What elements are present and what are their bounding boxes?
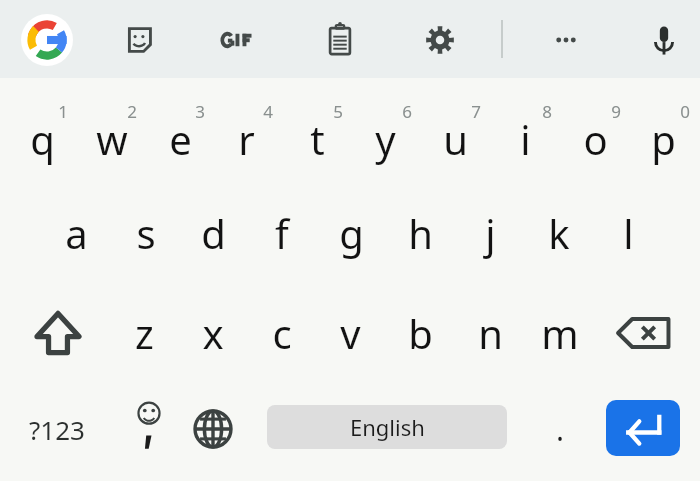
staticText: 6	[402, 100, 412, 123]
button[interactable]: y	[351, 105, 420, 173]
staticText: o	[583, 112, 608, 166]
staticText: p	[651, 112, 676, 166]
staticText: f	[275, 206, 289, 260]
button[interactable]: w	[77, 105, 146, 173]
button[interactable]: a	[42, 199, 111, 267]
button[interactable]: e	[146, 105, 215, 173]
button[interactable]: p	[629, 105, 698, 173]
button[interactable]: Voice input	[638, 14, 690, 66]
button[interactable]: Switch language	[182, 398, 244, 460]
staticText: 3	[195, 100, 205, 123]
button[interactable]: Enter	[606, 400, 680, 456]
staticText: u	[443, 112, 468, 166]
staticText: ?123	[29, 412, 85, 447]
staticText: b	[408, 306, 433, 360]
button[interactable]: q	[8, 105, 77, 173]
staticText: 4	[263, 100, 273, 123]
button[interactable]: .	[532, 400, 588, 458]
button[interactable]: 0	[650, 97, 700, 126]
button[interactable]: c	[247, 299, 316, 367]
staticText: s	[136, 206, 156, 260]
button[interactable]: k	[524, 199, 593, 267]
button[interactable]: 2	[97, 97, 166, 126]
staticText: 2	[127, 100, 137, 123]
staticText: w	[96, 112, 128, 166]
button[interactable]: 6	[372, 97, 441, 126]
staticText: .	[556, 409, 565, 450]
button[interactable]: u	[421, 105, 490, 173]
staticText: z	[135, 306, 154, 360]
button[interactable]: z	[110, 299, 179, 367]
button[interactable]: Stickers	[113, 14, 165, 66]
button[interactable]: f	[247, 199, 316, 267]
staticText: j	[485, 206, 496, 260]
button[interactable]: Clipboard	[314, 14, 366, 66]
button[interactable]: 3	[165, 97, 234, 126]
button[interactable]: More options	[540, 14, 592, 66]
staticText: i	[520, 112, 531, 166]
button[interactable]: g	[317, 199, 386, 267]
button[interactable]: 4	[233, 97, 302, 126]
staticText: 8	[542, 100, 552, 123]
button[interactable]: t	[283, 105, 352, 173]
button[interactable]: ?123	[14, 400, 100, 458]
button[interactable]: d	[179, 199, 248, 267]
staticText: c	[272, 306, 292, 360]
button[interactable]: r	[212, 105, 281, 173]
button[interactable]: 5	[303, 97, 372, 126]
button[interactable]: v	[316, 299, 385, 367]
button[interactable]: x	[178, 299, 247, 367]
button[interactable]: 8	[512, 97, 581, 126]
button[interactable]: Google Search	[21, 14, 73, 66]
staticText: a	[65, 206, 88, 260]
staticText: English	[350, 412, 425, 442]
staticText: v	[340, 306, 361, 360]
staticText: q	[30, 112, 55, 166]
button[interactable]: i	[491, 105, 560, 173]
button[interactable]: b	[386, 299, 455, 367]
button[interactable]: h	[386, 199, 455, 267]
button[interactable]: GIF	[212, 14, 264, 66]
button[interactable]: 1	[28, 97, 97, 126]
button[interactable]: s	[111, 199, 180, 267]
staticText: t	[310, 112, 325, 166]
staticText: g	[339, 206, 364, 260]
staticText: d	[201, 206, 226, 260]
button[interactable]: English	[267, 405, 507, 449]
staticText: n	[478, 306, 503, 360]
staticText: 7	[471, 100, 481, 123]
staticText: m	[541, 306, 579, 360]
button[interactable]: n	[456, 299, 525, 367]
staticText: 0	[680, 100, 690, 123]
button[interactable]: Emoji and comma	[118, 396, 180, 462]
staticText: e	[169, 112, 192, 166]
staticText: l	[623, 206, 634, 260]
staticText: 1	[58, 100, 68, 123]
staticText: k	[548, 206, 570, 260]
button[interactable]: o	[561, 105, 630, 173]
staticText: r	[238, 112, 255, 166]
button[interactable]: j	[456, 199, 525, 267]
staticText: 9	[611, 100, 621, 123]
button[interactable]: Settings	[414, 14, 466, 66]
button[interactable]: 9	[581, 97, 650, 126]
staticText: y	[375, 112, 396, 166]
button[interactable]: l	[594, 199, 663, 267]
staticText: 5	[333, 100, 343, 123]
staticText: x	[202, 306, 224, 360]
button[interactable]: 7	[441, 97, 510, 126]
button[interactable]: Backspace	[608, 298, 680, 368]
button[interactable]: m	[525, 299, 594, 367]
button[interactable]: Shift	[23, 298, 93, 368]
staticText: h	[408, 206, 433, 260]
